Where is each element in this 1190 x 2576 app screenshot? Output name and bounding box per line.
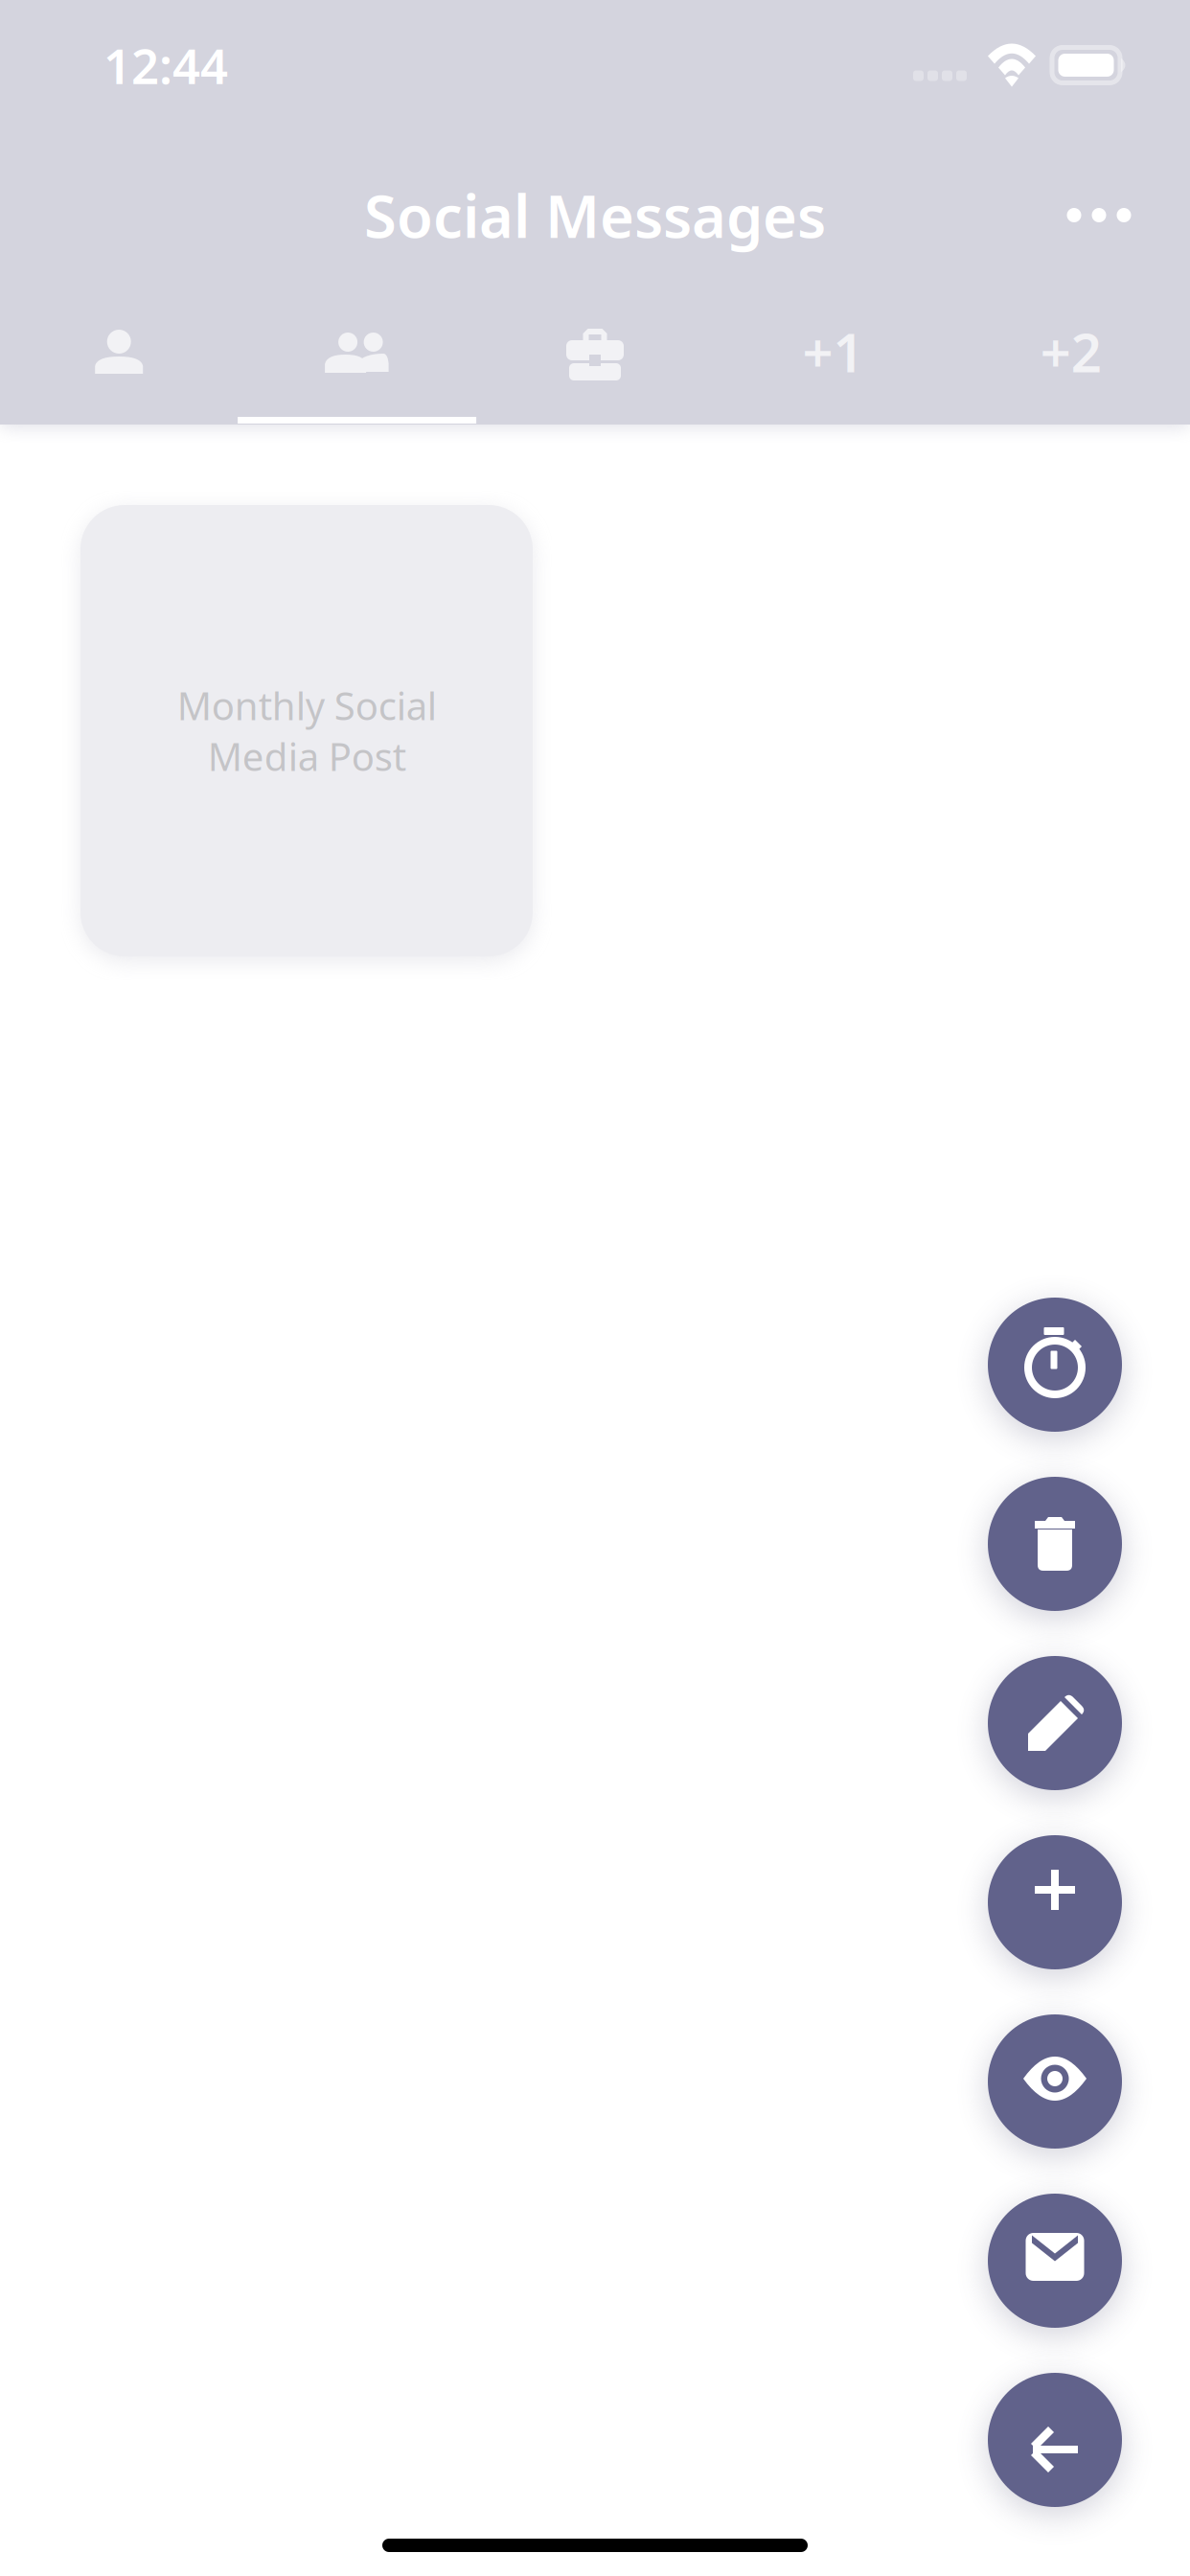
button[interactable]: Timer [988,1298,1122,1432]
button[interactable]: Groups [238,301,476,424]
staticText: Monthly Social Media Post [177,680,436,782]
button[interactable]: Delete [988,1477,1122,1611]
button[interactable]: Two more [952,301,1190,424]
button[interactable]: One more [714,301,952,424]
staticText: 12:44 [103,33,228,97]
staticText: Social Messages [364,176,826,254]
button[interactable]: Mail [988,2194,1122,2328]
button[interactable]: Edit [988,1656,1122,1790]
staticText: +1 [802,316,864,387]
staticText: +2 [1040,316,1102,387]
button[interactable]: Individuals [0,301,238,424]
button[interactable]: More options [1046,162,1152,268]
button[interactable]: Business [476,301,714,424]
button[interactable]: Add [988,1835,1122,1969]
button[interactable]: Back [988,2373,1122,2507]
button[interactable]: Preview [988,2014,1122,2149]
